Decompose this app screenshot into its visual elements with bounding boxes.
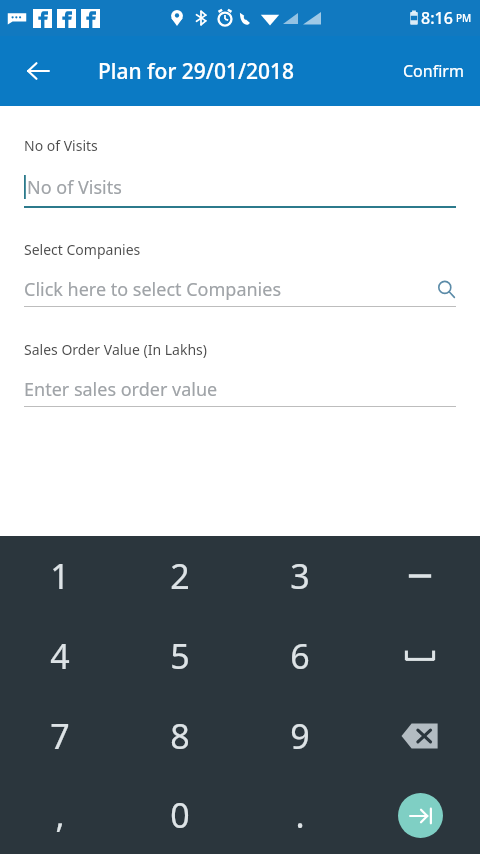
staticText: No of Visits [24,136,98,155]
button[interactable]: Back [14,47,62,95]
button[interactable]: No of Visits [24,172,456,202]
staticText: 7 [50,713,70,759]
staticText: 4 [50,633,70,679]
button[interactable]: 5 [120,616,240,696]
staticText: Confirm [403,60,464,82]
staticText: 5 [170,633,190,679]
button[interactable]: Confirm [393,52,474,90]
button[interactable]: Enter sales order value [24,375,456,403]
button[interactable]: , [0,776,120,854]
staticText: 1 [50,553,70,599]
button[interactable]: Backspace [360,696,480,776]
button[interactable]: 7 [0,696,120,776]
staticText: , [55,792,65,838]
button[interactable]: Next [360,776,480,854]
button[interactable]: . [240,776,360,854]
button[interactable]: 6 [240,616,360,696]
button[interactable]: 1 [0,536,120,616]
staticText: . [295,792,305,838]
staticText: PM [456,11,472,25]
button[interactable]: 3 [240,536,360,616]
button[interactable]: 2 [120,536,240,616]
staticText: Click here to select Companies [24,277,436,302]
button[interactable]: 0 [120,776,240,854]
button[interactable]: Click here to select Companies [24,275,456,303]
staticText: Enter sales order value [24,377,218,402]
button[interactable]: Space [360,616,480,696]
staticText: 9 [290,713,310,759]
button[interactable]: 4 [0,616,120,696]
staticText: 2 [170,553,190,599]
button[interactable]: 8 [120,696,240,776]
staticText: 3 [290,553,310,599]
staticText: No of Visits [27,175,122,200]
button[interactable]: 9 [240,696,360,776]
staticText: Sales Order Value (In Lakhs) [24,340,207,359]
staticText: 6 [290,633,310,679]
staticText: 0 [170,792,190,838]
staticText: 8:16 [421,7,453,29]
staticText: 8 [170,713,190,759]
staticText: Select Companies [24,240,141,259]
staticText: Plan for 29/01/2018 [98,57,295,86]
button[interactable]: Minus [360,536,480,616]
